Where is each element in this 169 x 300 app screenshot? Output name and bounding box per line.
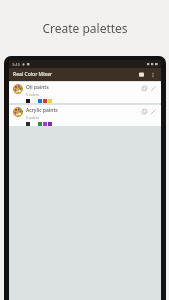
staticText: Oil paints	[26, 84, 49, 91]
button[interactable]: Acrylic paints	[9, 105, 161, 126]
staticText: Create palettes	[42, 20, 128, 36]
button[interactable]: Edit palette	[149, 107, 158, 116]
button[interactable]: Color mixer	[137, 70, 146, 79]
staticText: Acrylic paints	[26, 107, 58, 114]
staticText: 5 colors	[26, 92, 39, 97]
button[interactable]: Duplicate palette	[140, 107, 149, 116]
button[interactable]: Oil paints	[9, 82, 161, 103]
button[interactable]: More options	[148, 70, 157, 79]
button[interactable]: Edit palette	[149, 84, 158, 93]
button[interactable]: Duplicate palette	[140, 84, 149, 93]
staticText: 5 colors	[26, 115, 39, 120]
staticText: Real Color Mixer	[13, 71, 53, 78]
staticText: 3:45	[12, 62, 20, 67]
